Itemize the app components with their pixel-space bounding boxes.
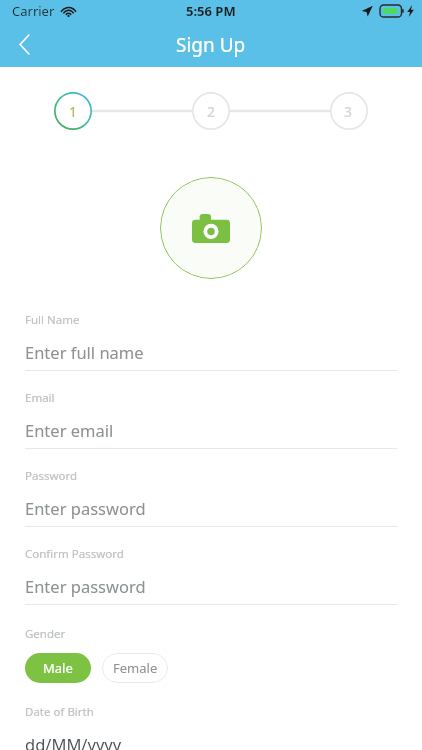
staticText: 1 <box>69 102 78 121</box>
button[interactable]: Email <box>25 390 397 449</box>
button[interactable]: Password <box>25 468 397 527</box>
staticText: Date of Birth <box>25 704 94 720</box>
button[interactable]: Back <box>0 22 48 67</box>
staticText: 2 <box>207 102 216 121</box>
staticText: dd/MM/yyyy <box>25 733 122 750</box>
staticText: Gender <box>25 626 66 642</box>
staticText: Enter full name <box>25 341 144 363</box>
button[interactable]: Full Name <box>25 312 397 371</box>
button[interactable]: Add profile photo <box>160 177 262 279</box>
staticText: Full Name <box>25 312 80 328</box>
staticText: Sign Up <box>176 32 246 58</box>
button[interactable]: Confirm Password <box>25 546 397 605</box>
button[interactable]: Male <box>25 653 91 683</box>
staticText: Email <box>25 390 55 406</box>
button[interactable]: Female <box>102 653 168 683</box>
staticText: Enter password <box>25 575 146 597</box>
staticText: Enter password <box>25 497 146 519</box>
staticText: Carrier <box>12 2 55 20</box>
staticText: Password <box>25 468 78 484</box>
staticText: Enter email <box>25 419 114 441</box>
staticText: Male <box>43 659 73 677</box>
staticText: 5:56 PM <box>186 2 236 20</box>
staticText: Confirm Password <box>25 546 124 562</box>
button[interactable]: Date of Birth <box>25 704 397 750</box>
staticText: 3 <box>344 102 353 121</box>
staticText: Female <box>113 659 158 677</box>
